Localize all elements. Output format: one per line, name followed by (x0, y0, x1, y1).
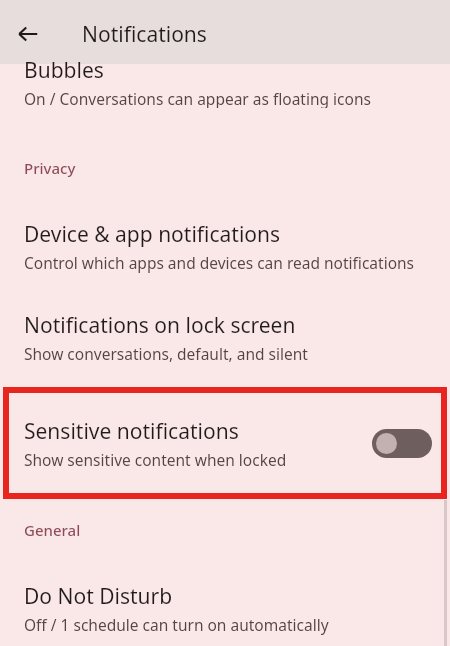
button[interactable]: Sensitive notifications (6, 390, 444, 496)
staticText: Bubbles (24, 56, 104, 85)
button[interactable]: Notifications on lock screen (0, 307, 450, 368)
staticText: General (24, 520, 81, 540)
staticText: Control which apps and devices can read … (24, 252, 415, 273)
button[interactable]: Device & app notifications (0, 216, 450, 277)
button[interactable]: Bubbles (0, 64, 450, 116)
staticText: Sensitive notifications (24, 417, 239, 446)
staticText: On / Conversations can appear as floatin… (24, 88, 371, 108)
staticText: Show sensitive content when locked (24, 449, 287, 470)
staticText: Notifications (82, 20, 207, 49)
staticText: Privacy (24, 158, 76, 178)
staticText: Device & app notifications (24, 220, 281, 249)
staticText: Off / 1 schedule can turn on automatical… (24, 614, 329, 635)
button[interactable]: Back (10, 16, 46, 52)
staticText: Notifications on lock screen (24, 311, 296, 340)
staticText: Do Not Disturb (24, 582, 173, 611)
button[interactable]: Do Not Disturb (0, 578, 450, 639)
staticText: Show conversations, default, and silent (24, 343, 308, 364)
button[interactable]: Sensitive notifications toggle (372, 429, 432, 458)
